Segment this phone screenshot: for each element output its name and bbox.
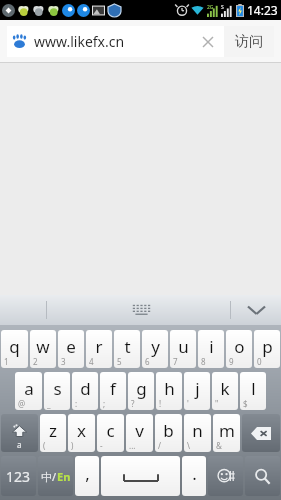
staticText: : [75,398,78,409]
staticText: ! [159,398,162,409]
staticText: \ [187,440,190,451]
staticText: / [158,440,161,451]
staticText: S [221,4,224,11]
staticText: 7 [173,356,178,367]
staticText: w [36,335,50,358]
staticText: $ [243,398,248,409]
staticText: 0 [257,356,262,367]
staticText: ' [187,398,189,409]
button[interactable]: k [212,372,238,410]
button[interactable]: w [30,330,56,368]
staticText: & [216,440,222,451]
button[interactable]: a [15,372,42,410]
staticText: o [234,335,245,358]
staticText: 123 [6,467,31,486]
button[interactable]: z [40,414,66,452]
button[interactable]: p [254,330,280,368]
button[interactable]: , [75,456,99,496]
staticText: 2G [207,4,214,11]
staticText: 3 [61,356,66,367]
button[interactable]: g [128,372,154,410]
staticText: d [80,377,91,400]
staticText: u [178,335,189,358]
staticText: a [24,377,34,400]
staticText: 6 [145,356,150,367]
button[interactable]: j [184,372,210,410]
staticText: 5 [117,356,122,367]
button[interactable]: b [155,414,182,452]
staticText: 9 [229,356,234,367]
staticText: @ [18,398,26,409]
staticText: ... [129,440,136,451]
staticText: " [215,398,219,409]
button[interactable]: Emoji [208,456,243,496]
staticText: j [195,377,200,400]
staticText: - [100,440,103,451]
button[interactable]: Space [101,456,180,496]
staticText: f [110,377,116,400]
staticText: g [136,377,147,400]
button[interactable]: f [100,372,126,410]
button[interactable]: Switch language [38,456,73,496]
staticText: 4 [89,356,94,367]
button[interactable]: u [170,330,196,368]
staticText: _ [47,398,51,409]
button[interactable]: m [213,414,240,452]
button[interactable]: d [72,372,98,410]
staticText: i [209,335,214,358]
staticText: ? [131,398,135,409]
button[interactable]: Keyboard layout [120,295,162,325]
staticText: 2 [33,356,38,367]
staticText: 访问 [235,33,263,51]
button[interactable]: y [142,330,168,368]
staticText: r [95,335,103,358]
staticText: En [57,469,71,484]
staticText: s [53,377,62,400]
button[interactable]: . [182,456,206,496]
button[interactable]: s [44,372,70,410]
button[interactable]: x [68,414,95,452]
staticText: t [124,335,131,358]
staticText: k [220,377,230,400]
staticText: 1 [4,356,9,367]
staticText: v [135,419,144,442]
button[interactable]: i [198,330,224,368]
button[interactable]: q [1,330,28,368]
button[interactable]: h [156,372,182,410]
button[interactable]: Search [245,456,280,496]
staticText: 8 [201,356,206,367]
staticText: y [151,335,160,358]
staticText: ; [103,398,106,409]
staticText: m [219,419,235,442]
staticText: e [66,335,76,358]
staticText: c [106,419,115,442]
staticText: 中/ [41,469,57,484]
staticText: , [85,462,90,485]
button[interactable]: Hide keyboard [231,295,281,325]
button[interactable]: www.likefx.cn [7,26,224,57]
button[interactable]: Backspace [242,414,280,452]
staticText: n [192,419,203,442]
button[interactable]: t [114,330,140,368]
button[interactable]: o [226,330,252,368]
button[interactable]: v [126,414,153,452]
button[interactable]: c [97,414,124,452]
button[interactable]: Numbers [1,456,36,496]
staticText: a [17,439,22,450]
button[interactable]: n [184,414,211,452]
staticText: 14:23 [247,2,278,18]
staticText: ) [71,440,74,451]
button[interactable]: 访问 [224,26,274,57]
staticText: h [164,377,175,400]
staticText: z [49,419,57,442]
button[interactable]: Clear [197,31,219,53]
staticText: x [77,419,86,442]
staticText: www.likefx.cn [34,32,197,51]
button[interactable]: r [86,330,112,368]
staticText: b [163,419,174,442]
staticText: q [9,335,20,358]
staticText: l [251,377,256,400]
button[interactable]: l [240,372,266,410]
button[interactable]: e [58,330,84,368]
button[interactable]: Shift [1,414,38,452]
